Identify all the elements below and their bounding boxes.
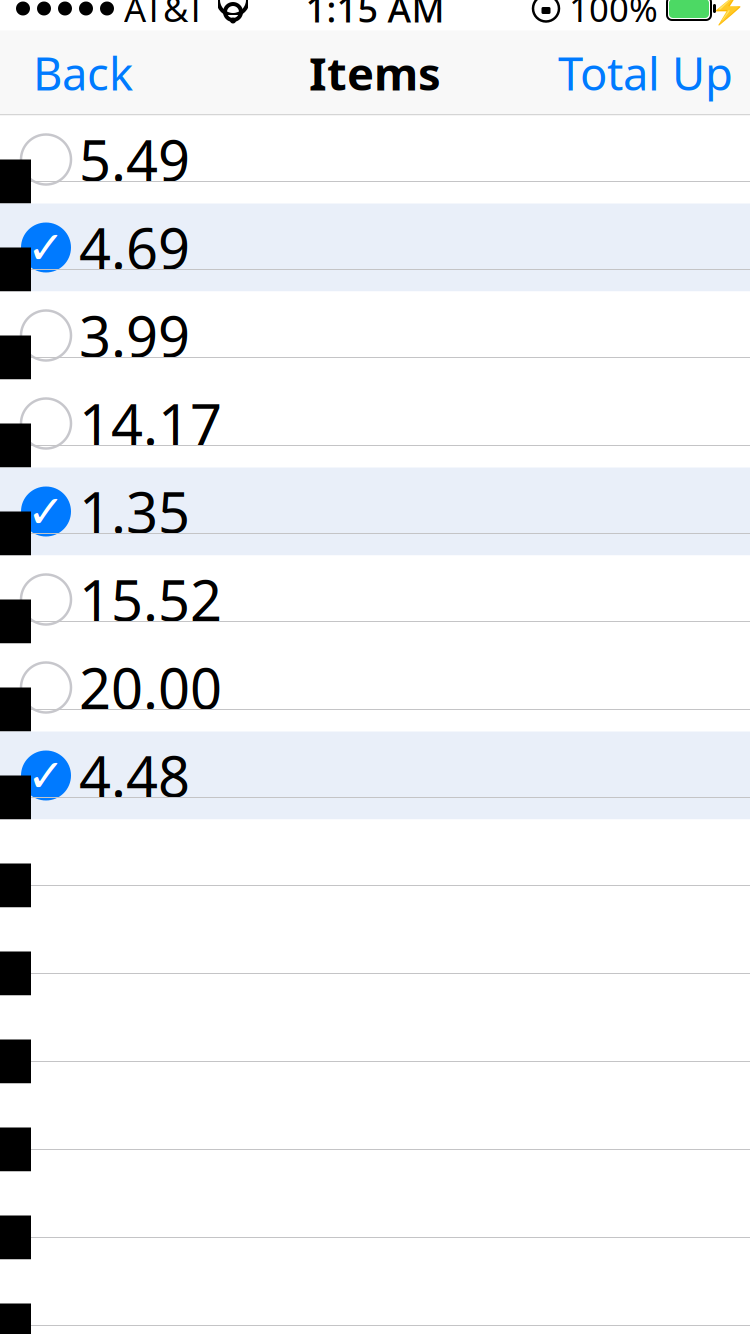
staticText: 100%: [569, 0, 658, 31]
staticText: Items: [309, 43, 441, 103]
staticText: 20.00: [79, 650, 222, 725]
button[interactable]: 20.00: [0, 643, 750, 731]
staticText: AT&T: [124, 0, 205, 31]
staticText: 1:15 AM: [305, 0, 444, 32]
staticText: ⚡: [709, 0, 746, 25]
staticText: 5.49: [79, 122, 190, 197]
staticText: ✓: [27, 750, 65, 801]
staticText: 14.17: [79, 386, 222, 461]
button[interactable]: 5.49: [0, 115, 750, 203]
staticText: Back: [33, 43, 133, 103]
button[interactable]: 14.17: [0, 379, 750, 467]
staticText: ✓: [27, 222, 65, 273]
button[interactable]: ✓: [0, 203, 750, 291]
staticText: 4.48: [79, 738, 190, 813]
staticText: 4.69: [79, 210, 190, 285]
staticText: 3.99: [79, 298, 190, 373]
button[interactable]: Total Up: [542, 33, 749, 113]
button[interactable]: ✓: [0, 731, 750, 819]
staticText: 1.35: [79, 474, 190, 549]
button[interactable]: ✓: [0, 467, 750, 555]
button[interactable]: Back: [17, 33, 149, 113]
staticText: ✓: [27, 486, 65, 537]
button[interactable]: 3.99: [0, 291, 750, 379]
staticText: 15.52: [79, 562, 222, 637]
button[interactable]: 15.52: [0, 555, 750, 643]
staticText: Total Up: [558, 43, 733, 103]
